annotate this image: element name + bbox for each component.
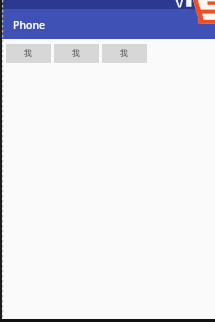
button[interactable]: 我	[6, 44, 51, 63]
staticText: Phone	[13, 18, 46, 32]
button[interactable]: 我	[54, 44, 99, 63]
button[interactable]: 我	[102, 44, 147, 63]
staticText: 我	[72, 48, 80, 58]
staticText: 我	[120, 48, 128, 58]
staticText: 我	[24, 48, 32, 58]
